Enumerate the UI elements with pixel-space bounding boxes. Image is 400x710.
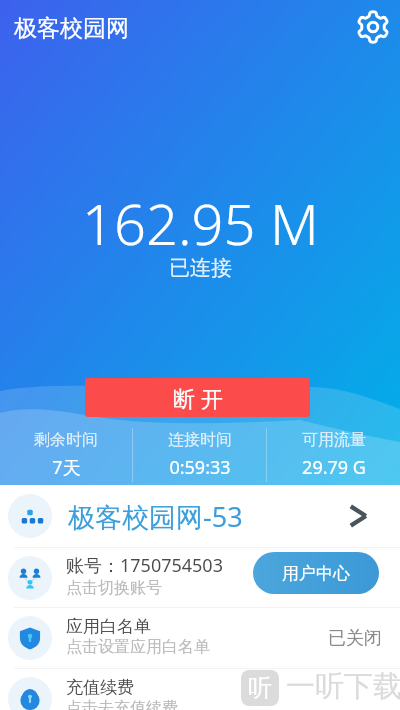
staticText: 可用流量 [302,430,366,450]
other: Open [339,499,373,533]
staticText: 点击切换账号 [66,578,162,598]
button[interactable]: 用户中心 [253,552,379,594]
button[interactable]: Settings [350,4,396,50]
staticText: 剩余时间 [34,430,98,450]
staticText: 0:59:33 [169,455,231,480]
staticText: 应用白名单 [66,616,151,637]
staticText: 连接时间 [168,430,232,450]
button[interactable]: 账号：1750754503 [0,548,400,607]
staticText: 听 [248,673,272,703]
staticText: 已连接 [169,255,232,281]
button[interactable]: 极客校园网-53 [0,485,400,547]
staticText: 断 开 [173,383,223,413]
staticText: 7天 [52,455,81,480]
staticText: 162.95 M [82,185,319,261]
staticText: 账号：1750754503 [66,553,223,578]
staticText: 极客校园网-53 [68,498,243,535]
staticText: 用户中心 [282,563,350,584]
button[interactable]: 充值续费 [0,669,400,710]
staticText: 一听下载 [286,668,400,705]
staticText: 29.79 G [302,455,366,480]
staticText: 点击设置应用白名单 [66,637,210,657]
staticText: 点击去充值续费 [66,698,178,710]
staticText: 极客校园网 [14,14,129,43]
staticText: 已关闭 [328,627,382,650]
staticText: 充值续费 [66,677,134,698]
button[interactable]: 断 开 [85,378,310,417]
button[interactable]: 应用白名单 [0,608,400,668]
